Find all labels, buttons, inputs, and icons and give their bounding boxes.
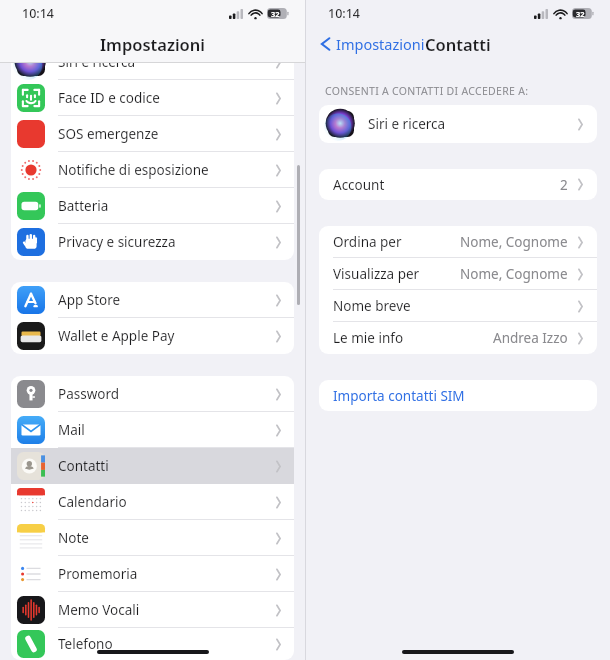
button[interactable]: Note	[11, 520, 294, 556]
button[interactable]: Siri e ricerca	[11, 44, 294, 80]
staticText: Calendario	[58, 493, 272, 511]
button[interactable]: Account	[319, 169, 597, 200]
staticText: Password	[58, 385, 272, 403]
button[interactable]: Le mie info	[319, 322, 597, 354]
staticText: Note	[58, 529, 272, 547]
staticText: 32	[576, 9, 585, 19]
button[interactable]: Nome breve	[319, 290, 597, 322]
button[interactable]: Telefono	[11, 628, 294, 660]
button[interactable]: App Store	[11, 282, 294, 318]
button[interactable]: Importa contatti SIM	[319, 380, 597, 411]
staticText: Importa contatti SIM	[333, 387, 587, 405]
staticText: Nome, Cognome	[460, 265, 568, 283]
staticText: Face ID e codice	[58, 89, 272, 107]
staticText: Contatti	[58, 457, 272, 475]
staticText: Nome, Cognome	[460, 233, 568, 251]
staticText: Promemoria	[58, 565, 272, 583]
button[interactable]: Ordina per	[319, 226, 597, 258]
staticText: 2	[560, 176, 568, 194]
button[interactable]: SOS emergenze	[11, 116, 294, 152]
button[interactable]: Siri e ricerca	[319, 105, 597, 143]
staticText: Siri e ricerca	[58, 53, 272, 71]
button[interactable]: Memo Vocali	[11, 592, 294, 628]
button[interactable]: Password	[11, 376, 294, 412]
button[interactable]: Face ID e codice	[11, 80, 294, 116]
staticText: Contatti	[425, 33, 491, 55]
staticText: 32	[271, 9, 280, 19]
staticText: Mail	[58, 421, 272, 439]
staticText: Visualizza per	[333, 265, 460, 283]
staticText: SOS emergenze	[58, 125, 272, 143]
staticText: Andrea Izzo	[493, 329, 568, 347]
staticText: Le mie info	[333, 329, 493, 347]
staticText: Memo Vocali	[58, 601, 272, 619]
staticText: Nome breve	[333, 297, 574, 315]
staticText: Telefono	[58, 635, 272, 653]
staticText: CONSENTI A CONTATTI DI ACCEDERE A:	[325, 84, 529, 98]
button[interactable]: Impostazioni	[316, 30, 429, 58]
staticText: Batteria	[58, 197, 272, 215]
staticText: 10:14	[328, 5, 361, 22]
staticText: App Store	[58, 291, 272, 309]
button[interactable]: Batteria	[11, 188, 294, 224]
button[interactable]: Privacy e sicurezza	[11, 224, 294, 260]
staticText: Account	[333, 176, 560, 194]
button[interactable]: Visualizza per	[319, 258, 597, 290]
staticText: Impostazioni	[336, 34, 425, 54]
staticText: Impostazioni	[100, 33, 205, 55]
button[interactable]: Wallet e Apple Pay	[11, 318, 294, 354]
staticText: Ordina per	[333, 233, 460, 251]
staticText: Siri e ricerca	[368, 115, 574, 133]
button[interactable]: Mail	[11, 412, 294, 448]
button[interactable]: Notifiche di esposizione	[11, 152, 294, 188]
staticText: Privacy e sicurezza	[58, 233, 272, 251]
button[interactable]: Calendario	[11, 484, 294, 520]
staticText: Notifiche di esposizione	[58, 161, 272, 179]
staticText: 10:14	[22, 5, 55, 22]
button[interactable]: Contatti	[11, 448, 294, 484]
button[interactable]: Promemoria	[11, 556, 294, 592]
staticText: Wallet e Apple Pay	[58, 327, 272, 345]
